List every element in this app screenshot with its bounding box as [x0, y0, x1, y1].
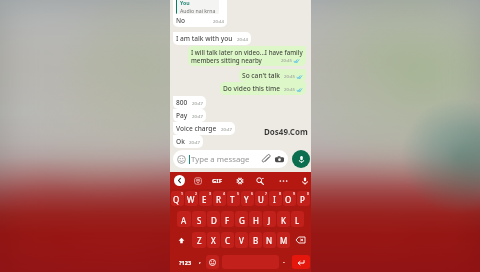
button[interactable]: Voice input: [129, 175, 140, 186]
button[interactable]: 800: [3, 96, 36, 109]
button[interactable]: Back: [174, 175, 185, 186]
button[interactable]: Voice message: [292, 150, 310, 168]
button[interactable]: W: [48, 191, 95, 206]
button[interactable]: G: [214, 211, 265, 227]
button[interactable]: Voice charge: [173, 122, 235, 135]
button[interactable]: Y: [241, 191, 254, 206]
button[interactable]: Search: [254, 175, 265, 186]
button[interactable]: Comma: [195, 255, 205, 269]
button[interactable]: P: [432, 191, 479, 206]
button[interactable]: Emoji: [173, 150, 288, 168]
button[interactable]: Voice input: [299, 175, 310, 186]
button[interactable]: 800: [173, 96, 206, 109]
button[interactable]: W: [185, 191, 198, 206]
button[interactable]: Q: [171, 191, 184, 206]
button[interactable]: X: [207, 232, 220, 248]
button[interactable]: Search: [84, 175, 95, 186]
button[interactable]: N: [263, 232, 276, 248]
button[interactable]: Ok: [173, 135, 203, 148]
button[interactable]: E: [199, 191, 212, 206]
button[interactable]: Voice message: [461, 150, 479, 168]
button[interactable]: G: [235, 211, 248, 227]
button[interactable]: More options: [108, 177, 119, 185]
button[interactable]: K: [277, 211, 290, 227]
button[interactable]: F: [221, 211, 234, 227]
button[interactable]: ?123: [176, 255, 194, 269]
button[interactable]: D: [207, 211, 220, 227]
button[interactable]: J: [263, 211, 276, 227]
button[interactable]: C: [170, 232, 217, 248]
button[interactable]: B: [249, 232, 262, 248]
button[interactable]: Y: [240, 191, 287, 206]
button[interactable]: V: [235, 232, 248, 248]
button[interactable]: V: [218, 232, 265, 248]
button[interactable]: D: [110, 211, 161, 227]
button[interactable]: More options: [278, 177, 289, 185]
button[interactable]: L: [291, 211, 304, 227]
button[interactable]: S: [192, 211, 206, 227]
button[interactable]: R: [144, 191, 191, 206]
button[interactable]: Z: [192, 232, 206, 248]
button[interactable]: Q: [1, 191, 47, 206]
button[interactable]: B: [266, 232, 313, 248]
button[interactable]: Do video this time: [220, 82, 306, 95]
button[interactable]: GIF: [41, 176, 53, 186]
button[interactable]: Enter: [292, 255, 310, 269]
button[interactable]: Ok: [3, 135, 33, 148]
button[interactable]: P: [297, 191, 310, 206]
button[interactable]: Emoji: [206, 255, 219, 269]
button[interactable]: Back: [4, 175, 15, 186]
button[interactable]: Emoji: [3, 150, 457, 168]
button[interactable]: H: [266, 211, 317, 227]
button[interactable]: I will talk later on video...I have fami…: [188, 46, 306, 66]
button[interactable]: Settings: [234, 175, 245, 186]
button[interactable]: F: [162, 211, 213, 227]
button[interactable]: S: [58, 211, 109, 227]
button[interactable]: Pay: [3, 109, 36, 122]
button[interactable]: I: [269, 191, 282, 206]
button[interactable]: Backspace: [291, 232, 310, 248]
button[interactable]: GIF: [211, 176, 223, 186]
button[interactable]: K: [370, 211, 421, 227]
button[interactable]: Shift: [171, 232, 191, 248]
button[interactable]: You: [173, 0, 227, 27]
button[interactable]: M: [277, 232, 290, 248]
button[interactable]: Voice charge: [3, 122, 65, 135]
button[interactable]: U: [255, 191, 268, 206]
button[interactable]: R: [213, 191, 226, 206]
button[interactable]: Stickers: [192, 175, 203, 186]
button[interactable]: Pay: [173, 109, 206, 122]
button[interactable]: I am talk with you: [173, 32, 251, 45]
button[interactable]: Settings: [64, 175, 75, 186]
button[interactable]: O: [384, 191, 431, 206]
button[interactable]: I: [336, 191, 383, 206]
button[interactable]: A: [7, 211, 57, 227]
button[interactable]: C: [221, 232, 234, 248]
button[interactable]: Stickers: [22, 175, 33, 186]
button[interactable]: E: [96, 191, 143, 206]
button[interactable]: O: [283, 191, 296, 206]
button[interactable]: Period: [279, 255, 289, 269]
button[interactable]: T: [192, 191, 239, 206]
button[interactable]: A: [177, 211, 191, 227]
button[interactable]: So can't talk: [239, 69, 306, 82]
button[interactable]: T: [227, 191, 240, 206]
button[interactable]: U: [288, 191, 335, 206]
